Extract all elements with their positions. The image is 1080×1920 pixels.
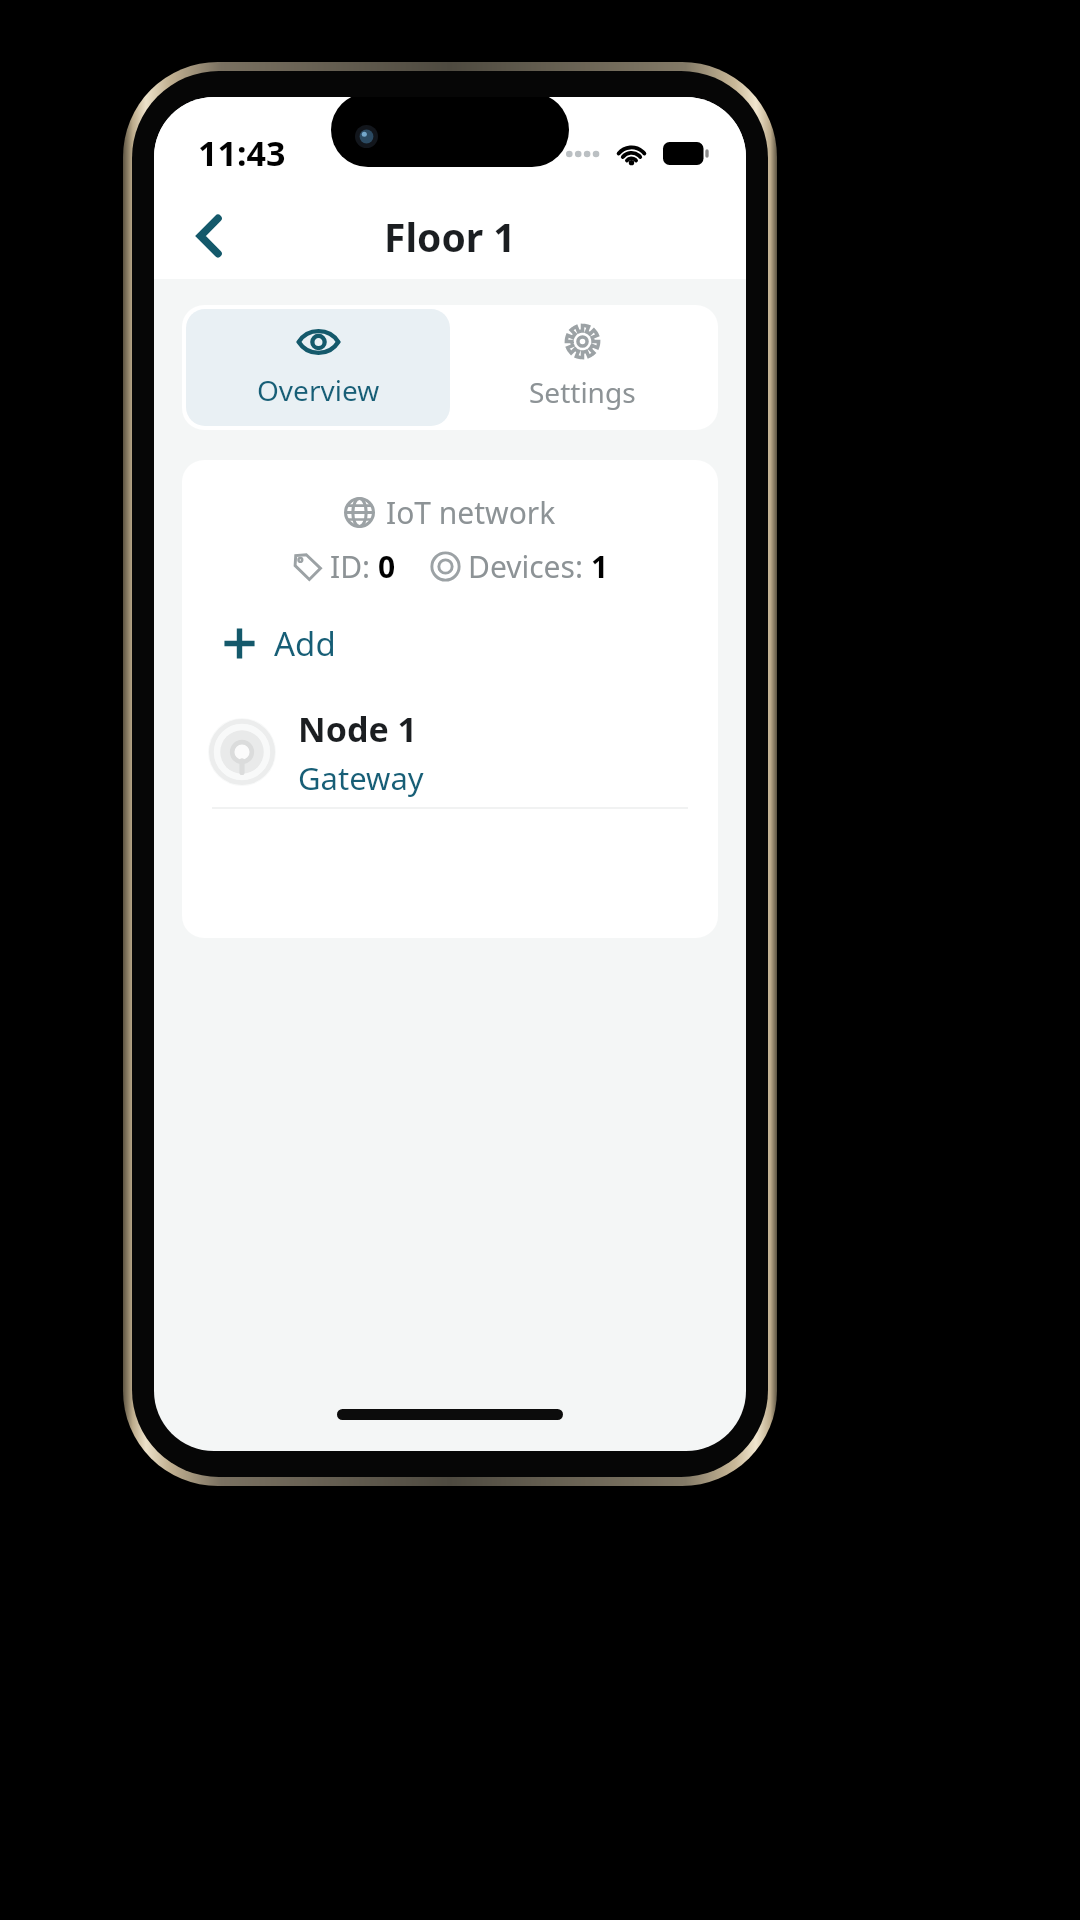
button[interactable]: Node 1 — [182, 697, 718, 807]
staticText: 0 — [378, 546, 396, 587]
staticText: Overview — [257, 371, 380, 409]
staticText: Node 1 — [298, 706, 417, 752]
staticText: 1 — [591, 546, 609, 587]
staticText: IoT network — [386, 492, 556, 533]
staticText: Floor 1 — [384, 210, 516, 263]
button[interactable]: Back — [174, 201, 244, 271]
staticText: Devices: — [468, 546, 591, 587]
staticText: Gateway — [298, 757, 424, 799]
staticText: ID: — [330, 546, 378, 587]
staticText: Settings — [529, 373, 636, 411]
staticText: 11:43 — [198, 130, 286, 176]
button[interactable]: Overview — [186, 309, 450, 426]
button[interactable]: Settings — [450, 309, 714, 426]
staticText: Add — [274, 621, 336, 666]
button[interactable]: Add — [208, 611, 350, 675]
